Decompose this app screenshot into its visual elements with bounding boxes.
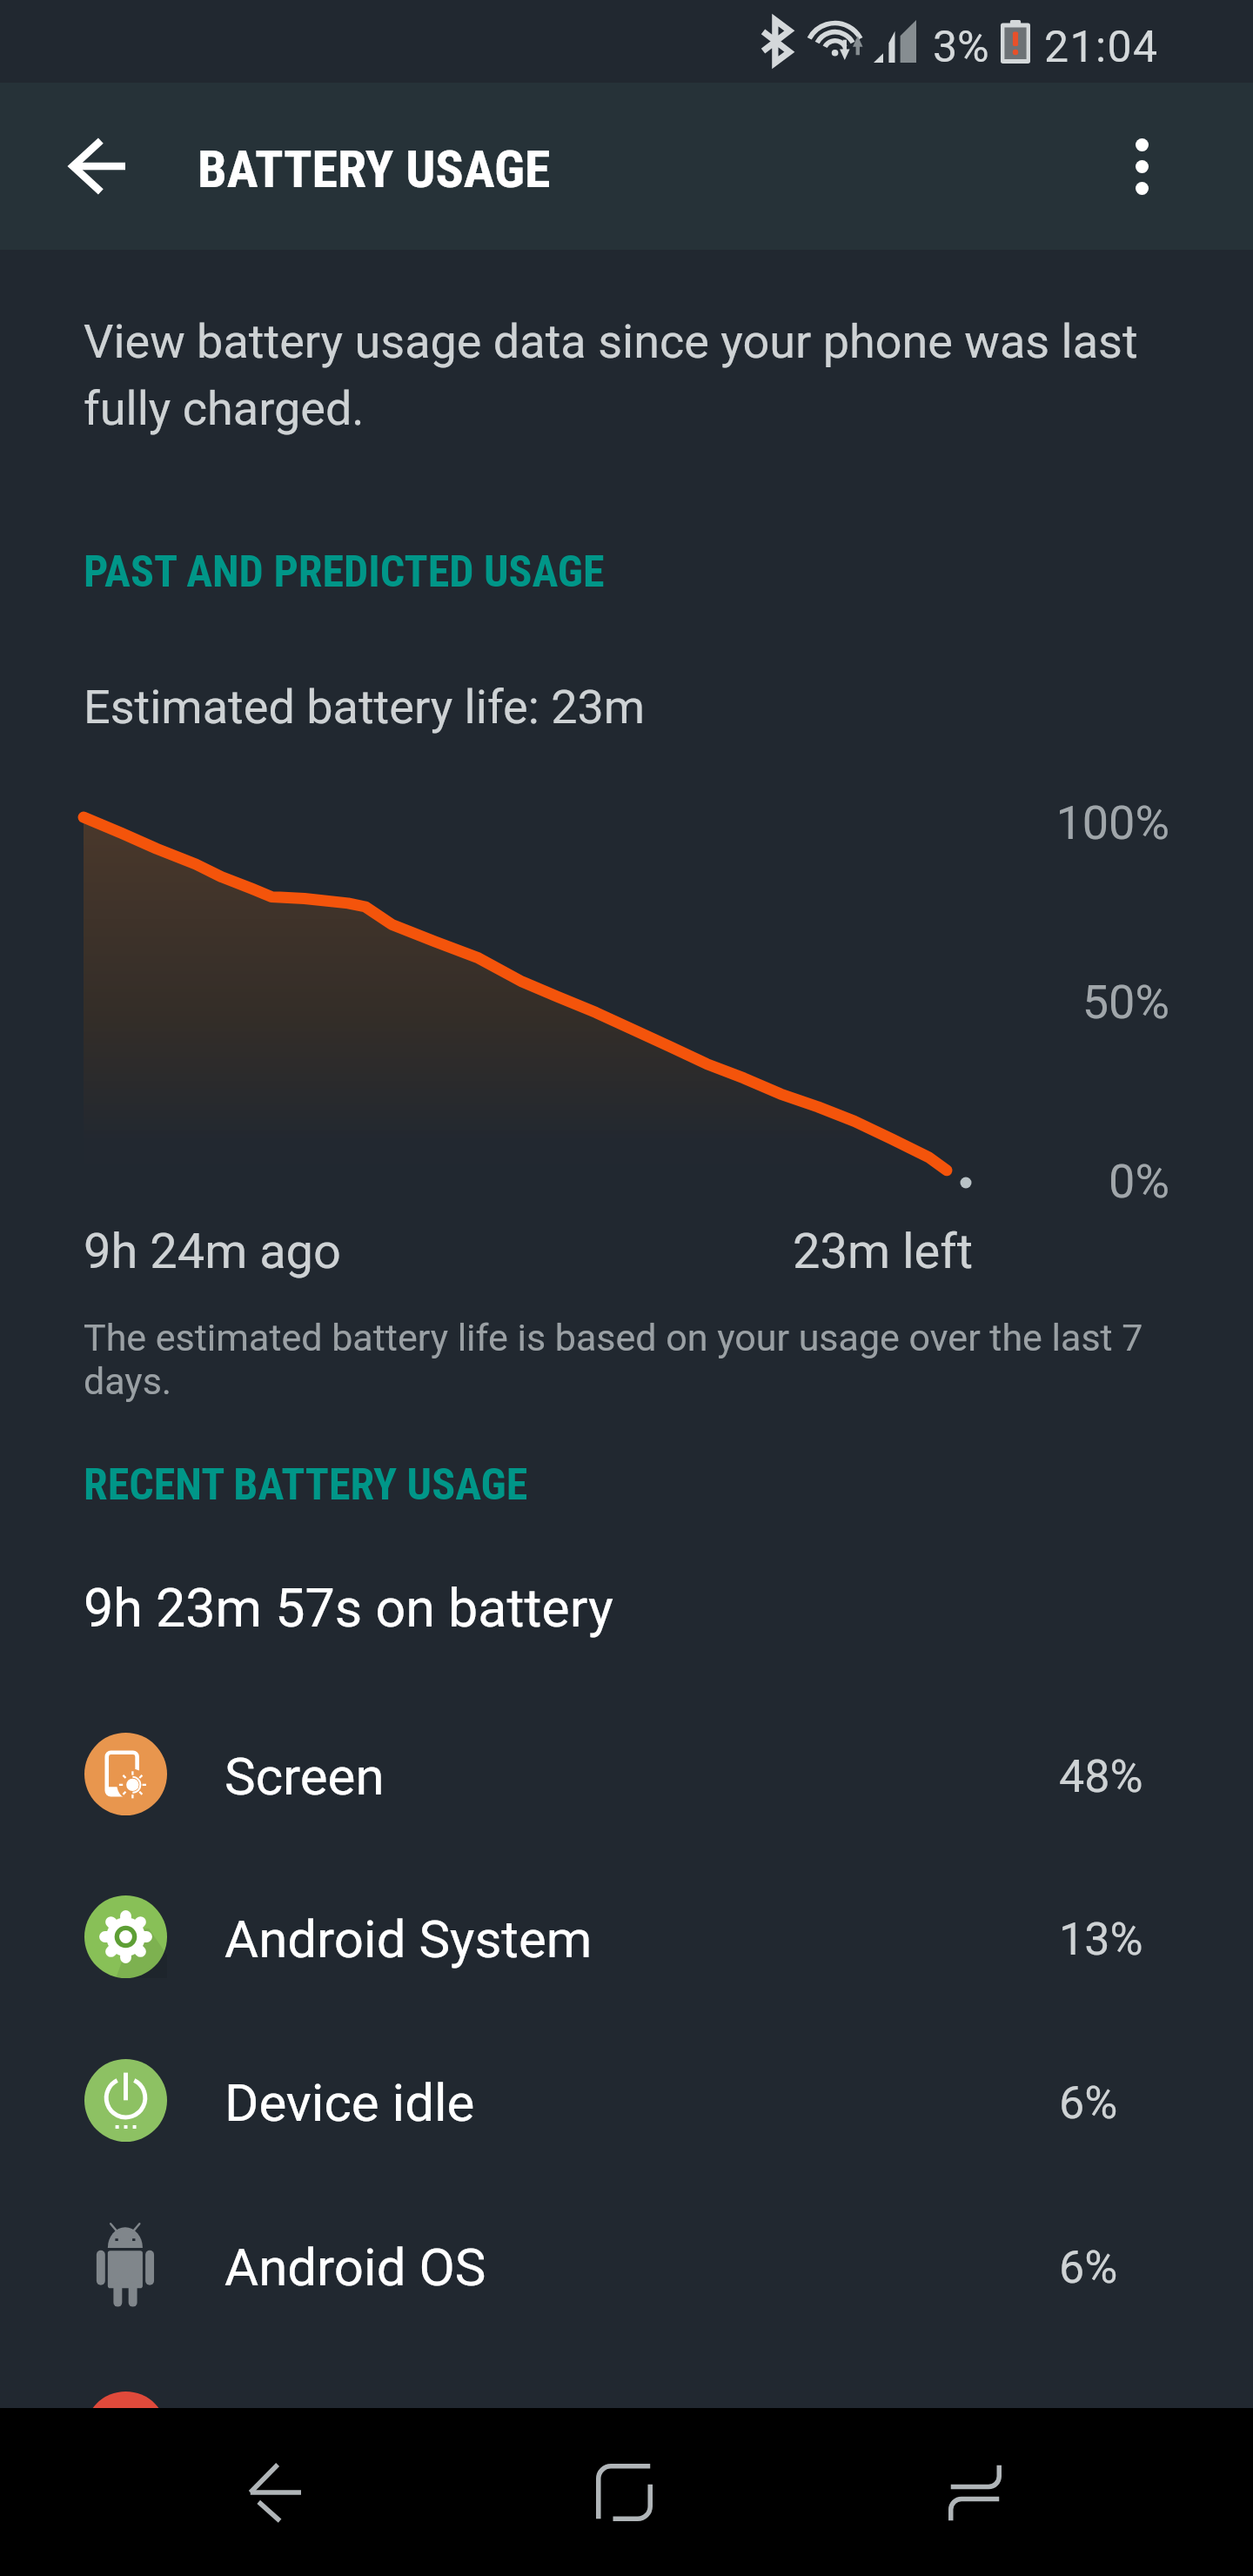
button[interactable]	[0, 2351, 1253, 2513]
button[interactable]: Android OS	[0, 2184, 1253, 2345]
staticText: 50%	[821, 975, 1169, 1030]
staticText: The estimated battery life is based on y…	[84, 1316, 1171, 1403]
staticText: RECENT BATTERY USAGE	[84, 1459, 528, 1511]
button[interactable]: Recent apps	[914, 2432, 1035, 2553]
button[interactable]: Home	[563, 2432, 685, 2553]
staticText: 6%	[1059, 2241, 1118, 2294]
staticText: Estimated battery life: 23m	[84, 680, 646, 735]
staticText: Android OS	[224, 2237, 486, 2298]
staticText: View battery usage data since your phone…	[84, 314, 1171, 436]
button[interactable]: Screen	[0, 1693, 1253, 1855]
staticText: 48%	[1059, 1750, 1143, 1803]
staticText: 6%	[1059, 2076, 1118, 2130]
staticText: Screen	[224, 1746, 385, 1807]
staticText: Android System	[224, 1909, 593, 1969]
staticText: PAST AND PREDICTED USAGE	[84, 547, 605, 598]
button[interactable]: More options	[1093, 117, 1190, 215]
button[interactable]: Android System	[0, 1855, 1253, 2017]
staticText: 100%	[821, 795, 1169, 850]
staticText: Device idle	[224, 2072, 475, 2133]
staticText: 13%	[1059, 1913, 1143, 1966]
staticText: 23m left	[793, 1223, 974, 1280]
staticText: 9h 23m 57s on battery	[84, 1577, 613, 1639]
staticText: 21:04	[1044, 22, 1159, 73]
button[interactable]: Device idle	[0, 2019, 1253, 2181]
button[interactable]: Back	[213, 2432, 335, 2553]
button[interactable]: Navigate up	[49, 117, 146, 215]
staticText: 0%	[821, 1154, 1169, 1209]
staticText: 3%	[933, 22, 989, 73]
staticText: 9h 24m ago	[84, 1223, 341, 1280]
staticText: BATTERY USAGE	[198, 138, 551, 199]
